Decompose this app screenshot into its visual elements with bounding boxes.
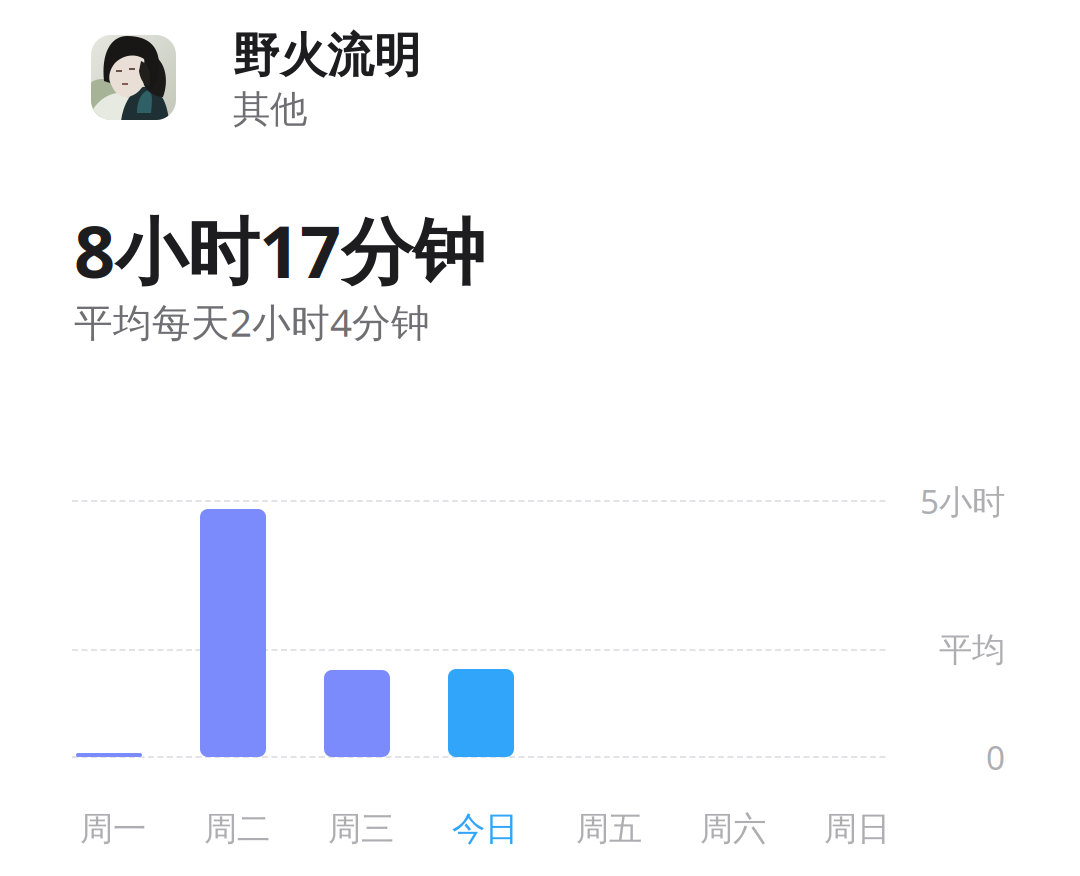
button[interactable]: 周日	[795, 495, 919, 855]
staticText: 今日	[452, 808, 518, 849]
button[interactable]: 今日	[423, 495, 547, 855]
staticText: 周三	[328, 808, 394, 849]
staticText: 周一	[80, 808, 146, 849]
staticText: 平均每天2小时4分钟	[74, 296, 430, 347]
staticText: 周日	[824, 808, 890, 849]
staticText: 平均	[939, 629, 1005, 670]
staticText: 其他	[233, 86, 307, 132]
staticText: 5小时	[920, 479, 1005, 523]
staticText: 周五	[576, 808, 642, 849]
button[interactable]: 野火流明	[0, 0, 1080, 140]
button[interactable]: 周二	[175, 495, 299, 855]
button[interactable]: 周六	[671, 495, 795, 855]
button[interactable]: 周一	[51, 495, 175, 855]
staticText: 野火流明	[233, 27, 421, 84]
button[interactable]: 周三	[299, 495, 423, 855]
staticText: 8小时17分钟	[74, 202, 485, 298]
staticText: 周六	[700, 808, 766, 849]
button[interactable]: 周五	[547, 495, 671, 855]
staticText: 0	[986, 735, 1005, 779]
staticText: 周二	[204, 808, 270, 849]
